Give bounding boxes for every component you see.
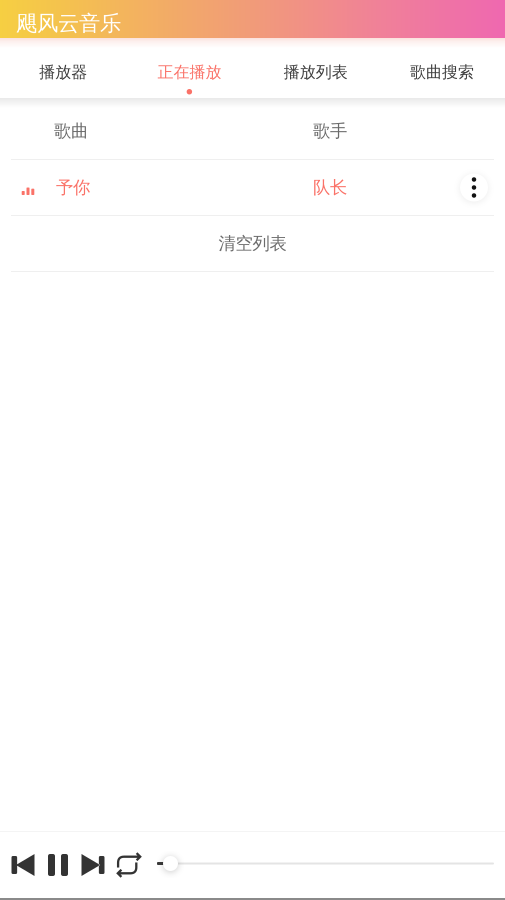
staticText: 清空列表 xyxy=(218,233,286,254)
staticText: 播放器 xyxy=(39,62,87,82)
staticText: 歌曲 xyxy=(54,120,88,142)
staticText: 歌曲搜索 xyxy=(410,62,474,82)
button[interactable]: 清空列表 xyxy=(0,216,505,271)
staticText: 队长 xyxy=(313,177,347,198)
button[interactable]: 歌曲搜索 xyxy=(379,48,505,98)
button[interactable]: 正在播放 xyxy=(126,48,252,98)
staticText: 飓风云音乐 xyxy=(16,10,121,37)
button[interactable]: Next xyxy=(75,843,111,887)
button[interactable]: Repeat xyxy=(111,843,147,887)
button[interactable]: 播放列表 xyxy=(252,48,379,98)
button[interactable]: Previous xyxy=(5,843,41,887)
staticText: 予你 xyxy=(56,177,90,198)
button[interactable]: 播放器 xyxy=(0,48,126,98)
button[interactable]: Pause xyxy=(41,843,75,887)
staticText: 歌手 xyxy=(313,120,347,142)
button[interactable]: More options xyxy=(460,173,488,201)
button[interactable]: 予你 xyxy=(0,160,505,215)
staticText: 正在播放 xyxy=(157,62,221,82)
staticText: 播放列表 xyxy=(284,62,348,82)
